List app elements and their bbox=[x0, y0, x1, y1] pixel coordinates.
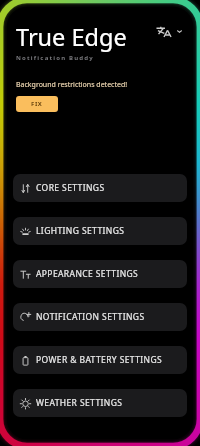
button[interactable]: NOTIFICATION SETTINGS bbox=[13, 303, 187, 331]
staticText: Background restrictions detected! bbox=[16, 80, 128, 90]
staticText: NOTIFICATION SETTINGS bbox=[36, 311, 145, 323]
staticText: APPEARANCE SETTINGS bbox=[36, 268, 139, 280]
staticText: CORE SETTINGS bbox=[36, 182, 105, 194]
staticText: LIGHTING SETTINGS bbox=[36, 225, 125, 237]
staticText: Notification Buddy bbox=[16, 54, 94, 62]
staticText: True Edge bbox=[16, 21, 127, 53]
button[interactable]: LIGHTING SETTINGS bbox=[13, 217, 187, 245]
button[interactable]: CORE SETTINGS bbox=[13, 174, 187, 202]
button[interactable]: FIX bbox=[16, 96, 58, 112]
staticText: POWER & BATTERY SETTINGS bbox=[36, 354, 163, 366]
staticText: WEATHER SETTINGS bbox=[36, 397, 123, 409]
button[interactable]: POWER & BATTERY SETTINGS bbox=[13, 346, 187, 374]
button[interactable]: APPEARANCE SETTINGS bbox=[13, 260, 187, 288]
button[interactable]: Change language bbox=[153, 23, 185, 40]
staticText: FIX bbox=[31, 100, 43, 108]
button[interactable]: WEATHER SETTINGS bbox=[13, 389, 187, 417]
